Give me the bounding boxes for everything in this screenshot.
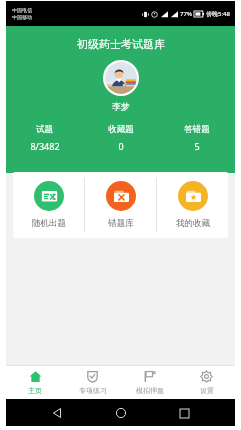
staticText: 中国电信: [12, 7, 32, 13]
button[interactable]: 试题: [6, 124, 83, 152]
button[interactable]: 主页: [6, 366, 64, 399]
staticText: 设置: [200, 386, 214, 395]
staticText: 答错题: [184, 124, 210, 135]
button[interactable]: 错题库: [85, 172, 156, 238]
button[interactable]: 收藏题: [83, 124, 159, 152]
button[interactable]: 设置: [178, 366, 235, 399]
button[interactable]: 主屏幕: [109, 401, 133, 425]
button[interactable]: 模拟押题: [121, 366, 178, 399]
staticText: 李梦: [112, 101, 130, 112]
staticText: 收藏题: [108, 124, 134, 135]
staticText: 试题: [36, 124, 53, 135]
button[interactable]: 随机出题: [13, 172, 84, 238]
staticText: 傍晚5:48: [206, 10, 230, 18]
staticText: 8/3482: [30, 140, 60, 152]
staticText: 5: [194, 140, 200, 152]
staticText: 我的收藏: [176, 218, 210, 229]
button[interactable]: 答错题: [159, 124, 235, 152]
staticText: 错题库: [108, 218, 134, 229]
staticText: 0: [118, 140, 124, 152]
button[interactable]: 专项练习: [64, 366, 121, 399]
staticText: 随机出题: [32, 218, 66, 229]
button[interactable]: 最近任务: [172, 401, 196, 425]
button[interactable]: 用户头像: [105, 62, 137, 94]
staticText: 专项练习: [79, 386, 107, 395]
staticText: 中国移动: [12, 14, 32, 20]
button[interactable]: 我的收藏: [157, 172, 228, 238]
button[interactable]: 返回: [45, 401, 69, 425]
staticText: 初级药士考试题库: [77, 37, 165, 51]
staticText: 主页: [28, 386, 42, 395]
staticText: 模拟押题: [136, 386, 164, 395]
staticText: 77%: [180, 10, 192, 18]
